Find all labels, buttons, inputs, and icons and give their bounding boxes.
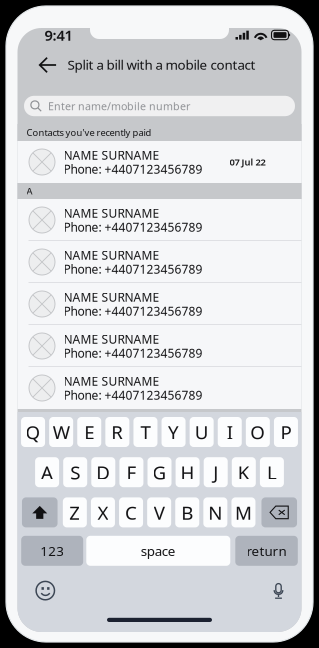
button[interactable]: B — [175, 497, 199, 527]
staticText: Phone: +4407123456789 — [63, 387, 202, 403]
staticText: Phone: +4407123456789 — [63, 161, 202, 177]
button[interactable]: NAME SURNAME — [17, 141, 301, 183]
button[interactable]: NAME SURNAME — [17, 325, 301, 367]
button[interactable]: L — [260, 457, 284, 487]
button[interactable]: J — [204, 457, 228, 487]
button[interactable]: Dictation — [261, 580, 295, 602]
staticText: V — [154, 500, 165, 525]
button[interactable]: 123 — [21, 536, 83, 566]
staticText: B — [181, 500, 193, 525]
button[interactable]: N — [203, 497, 227, 527]
staticText: space — [141, 542, 176, 560]
staticText: 07 Jul 22 — [229, 156, 265, 168]
staticText: Q — [26, 420, 41, 444]
staticText: Split a bill with a mobile contact — [67, 56, 255, 73]
button[interactable]: I — [218, 417, 242, 447]
button[interactable]: K — [232, 457, 256, 487]
staticText: Z — [69, 500, 80, 525]
button[interactable]: G — [147, 457, 171, 487]
button[interactable]: F — [119, 457, 143, 487]
button[interactable]: space — [86, 536, 230, 566]
button[interactable]: M — [231, 497, 255, 527]
button[interactable]: NAME SURNAME — [17, 367, 301, 409]
button[interactable]: Back — [28, 46, 67, 84]
button[interactable]: return — [235, 536, 298, 566]
button[interactable]: Y — [162, 417, 186, 447]
staticText: F — [126, 460, 136, 485]
button[interactable]: Q — [21, 417, 45, 447]
button[interactable]: C — [119, 497, 143, 527]
staticText: return — [246, 542, 286, 560]
staticText: R — [111, 420, 123, 444]
staticText: K — [238, 460, 250, 485]
staticText: E — [84, 420, 94, 444]
staticText: C — [125, 500, 137, 525]
staticText: I — [227, 420, 233, 444]
staticText: M — [235, 500, 252, 525]
button[interactable]: W — [49, 417, 73, 447]
staticText: NAME SURNAME — [63, 147, 159, 163]
staticText: O — [250, 420, 265, 444]
staticText: 123 — [40, 542, 64, 560]
staticText: H — [181, 460, 195, 485]
button[interactable]: V — [147, 497, 171, 527]
button[interactable]: S — [63, 457, 87, 487]
staticText: NAME SURNAME — [63, 289, 159, 305]
staticText: A — [26, 185, 32, 197]
button[interactable]: Z — [63, 497, 87, 527]
button[interactable]: NAME SURNAME — [17, 283, 301, 325]
button[interactable]: D — [91, 457, 115, 487]
button[interactable]: NAME SURNAME — [17, 199, 301, 241]
staticText: P — [280, 420, 291, 444]
staticText: G — [152, 460, 166, 485]
button[interactable]: R — [105, 417, 129, 447]
staticText: Enter name/mobile number — [48, 99, 190, 113]
button[interactable]: H — [176, 457, 200, 487]
button[interactable]: T — [133, 417, 157, 447]
staticText: U — [195, 420, 209, 444]
button[interactable]: NAME SURNAME — [17, 241, 301, 283]
staticText: 9:41 — [44, 25, 72, 45]
button[interactable]: Shift — [22, 497, 57, 527]
button[interactable]: Emoji keyboard — [28, 580, 62, 602]
button[interactable]: X — [91, 497, 115, 527]
staticText: Y — [168, 420, 179, 444]
staticText: N — [208, 500, 222, 525]
staticText: T — [140, 420, 150, 444]
staticText: NAME SURNAME — [63, 331, 159, 347]
button[interactable]: E — [77, 417, 101, 447]
staticText: Phone: +4407123456789 — [63, 261, 202, 277]
button[interactable]: U — [190, 417, 214, 447]
staticText: J — [213, 460, 218, 485]
button[interactable]: P — [274, 417, 298, 447]
staticText: NAME SURNAME — [63, 247, 159, 263]
staticText: L — [267, 460, 277, 485]
staticText: X — [97, 500, 108, 525]
staticText: A — [41, 460, 53, 485]
button[interactable]: Delete — [261, 497, 297, 527]
button[interactable]: O — [246, 417, 270, 447]
staticText: Contacts you've recently paid — [26, 126, 151, 139]
staticText: NAME SURNAME — [63, 373, 159, 389]
staticText: Phone: +4407123456789 — [63, 303, 202, 319]
staticText: Phone: +4407123456789 — [63, 219, 202, 235]
staticText: D — [96, 460, 110, 485]
staticText: S — [70, 460, 80, 485]
staticText: Phone: +4407123456789 — [63, 345, 202, 361]
staticText: NAME SURNAME — [63, 205, 159, 221]
button[interactable]: A — [35, 457, 59, 487]
staticText: W — [53, 420, 70, 444]
